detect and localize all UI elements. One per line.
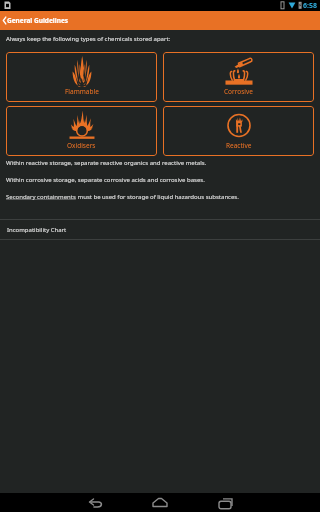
staticText: Always keep the following types of chemi…	[6, 35, 171, 43]
staticText: Within corrosive storage, separate corro…	[6, 176, 205, 184]
staticText: Incompatibility Chart	[7, 226, 67, 234]
staticText: General Guidelines	[7, 16, 69, 25]
staticText: Flammable	[65, 87, 99, 96]
staticText: Reactive	[226, 141, 252, 150]
staticText: 6:58	[303, 1, 317, 11]
staticText: Within reactive storage, separate reacti…	[6, 159, 207, 167]
staticText: Corrosive	[224, 87, 253, 96]
button[interactable]: Back	[0, 11, 7, 30]
button[interactable]: Incompatibility Chart	[0, 220, 320, 239]
button[interactable]: Reactive	[163, 106, 314, 156]
button[interactable]: Recents	[211, 493, 237, 512]
staticText: Oxidisers	[67, 141, 96, 150]
button[interactable]: Home	[147, 493, 173, 512]
button[interactable]: Oxidisers	[6, 106, 157, 156]
staticText: must be used for storage of liquid hazar…	[76, 193, 239, 201]
button[interactable]: Corrosive	[163, 52, 314, 102]
button[interactable]: Back	[83, 493, 109, 512]
button[interactable]: Flammable	[6, 52, 157, 102]
staticText: Secondary containments	[6, 193, 76, 201]
